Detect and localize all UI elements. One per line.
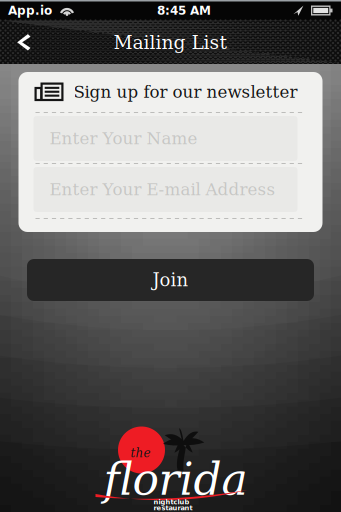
button[interactable]: Join bbox=[27, 259, 314, 301]
button[interactable]: Back bbox=[0, 21, 48, 64]
staticText: Mailing List bbox=[113, 32, 227, 53]
staticText: Sign up for our newsletter bbox=[73, 82, 297, 102]
staticText: nightclub bbox=[153, 498, 189, 506]
staticText: Enter Your E-mail Address bbox=[49, 180, 275, 199]
staticText: restaurant bbox=[153, 504, 192, 512]
staticText: 8:45 AM bbox=[157, 3, 211, 17]
staticText: Enter Your Name bbox=[49, 129, 197, 148]
staticText: florida bbox=[103, 454, 247, 505]
button[interactable]: Enter Your Name bbox=[33, 116, 297, 161]
button[interactable]: Enter Your E-mail Address bbox=[33, 167, 297, 212]
staticText: App.io bbox=[8, 3, 52, 17]
staticText: the bbox=[130, 446, 150, 460]
staticText: Join bbox=[152, 269, 188, 290]
